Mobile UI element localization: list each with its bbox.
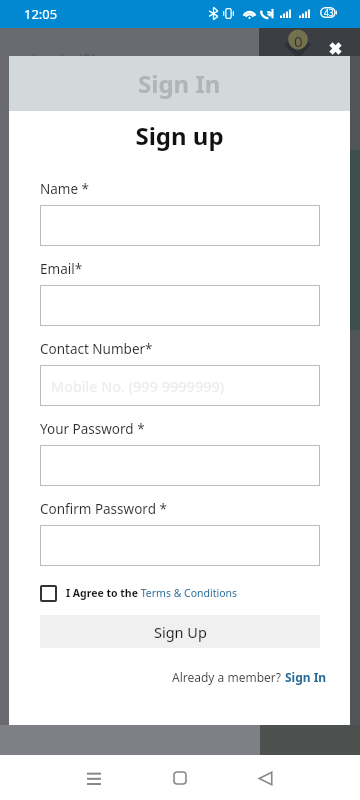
- staticText: Confirm Password *: [40, 500, 167, 518]
- staticText: I Agree to the Terms & Conditions: [66, 586, 238, 600]
- staticText: 43: [324, 7, 334, 18]
- staticText: Login/Signup: [31, 49, 137, 71]
- staticText: Your Password *: [40, 420, 145, 438]
- staticText: Sign In: [138, 67, 221, 100]
- button[interactable]: [40, 445, 320, 486]
- staticText: 0: [294, 31, 303, 51]
- staticText: Contact Number*: [40, 340, 153, 358]
- button[interactable]: [40, 525, 320, 566]
- staticText: Mobile No. (999 9999999): [51, 376, 225, 396]
- staticText: Already a member?: [172, 669, 285, 685]
- button[interactable]: [40, 285, 320, 326]
- staticText: Sign up: [9, 119, 350, 152]
- button[interactable]: Sign In: [9, 56, 350, 111]
- button[interactable]: Home: [156, 756, 204, 800]
- other: I agree checkbox: [40, 585, 57, 602]
- button[interactable]: [40, 205, 320, 246]
- staticText: 12:05: [24, 5, 58, 23]
- button[interactable]: I agree checkbox: [40, 580, 238, 606]
- button[interactable]: Mobile No. (999 9999999): [40, 365, 320, 406]
- button[interactable]: Close: [326, 39, 344, 57]
- staticText: Email*: [40, 260, 83, 278]
- staticText: Sign Up: [154, 622, 207, 642]
- staticText: Name *: [40, 180, 90, 198]
- button[interactable]: Sign Up: [40, 615, 320, 648]
- button[interactable]: Sign In: [285, 669, 327, 685]
- button[interactable]: Back: [241, 756, 289, 800]
- button[interactable]: Recent apps: [70, 756, 118, 800]
